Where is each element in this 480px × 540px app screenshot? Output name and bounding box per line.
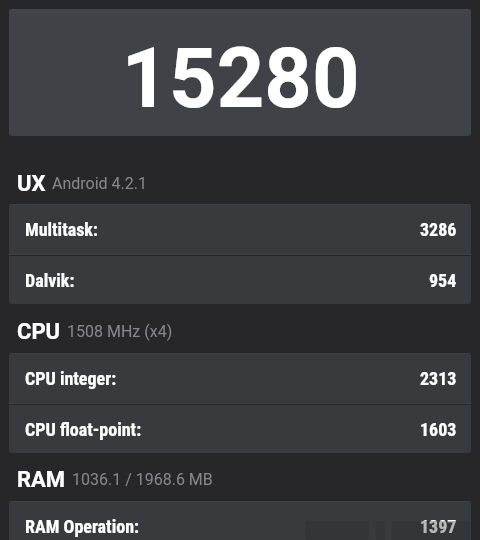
staticText: 1603: [420, 419, 457, 440]
staticText: Dalvik:: [25, 270, 75, 291]
staticText: CPU float-point:: [25, 419, 142, 440]
button[interactable]: CPU integer:: [9, 354, 471, 403]
button[interactable]: Total benchmark score 15280: [9, 9, 471, 136]
button[interactable]: RAM Operation:: [9, 502, 471, 540]
staticText: 15280: [121, 30, 360, 127]
staticText: CPU integer:: [25, 368, 117, 389]
staticText: UX: [17, 171, 46, 197]
staticText: 1036.1 / 1968.6 MB: [72, 470, 213, 489]
staticText: CPU: [17, 319, 61, 345]
staticText: 2313: [420, 368, 457, 389]
staticText: Android 4.2.1: [52, 174, 147, 193]
staticText: 3286: [420, 219, 457, 240]
button[interactable]: CPU: [0, 319, 480, 345]
button[interactable]: Dalvik:: [9, 256, 471, 304]
button[interactable]: RAM: [0, 467, 480, 493]
button[interactable]: Multitask:: [9, 205, 471, 254]
button[interactable]: UX: [0, 171, 480, 197]
staticText: RAM: [17, 467, 66, 493]
staticText: 1397: [420, 516, 457, 537]
staticText: RAM Operation:: [25, 516, 139, 537]
staticText: 954: [429, 270, 457, 291]
staticText: 1508 MHz (x4): [67, 322, 173, 341]
button[interactable]: CPU float-point:: [9, 405, 471, 453]
staticText: Multitask:: [25, 219, 98, 240]
